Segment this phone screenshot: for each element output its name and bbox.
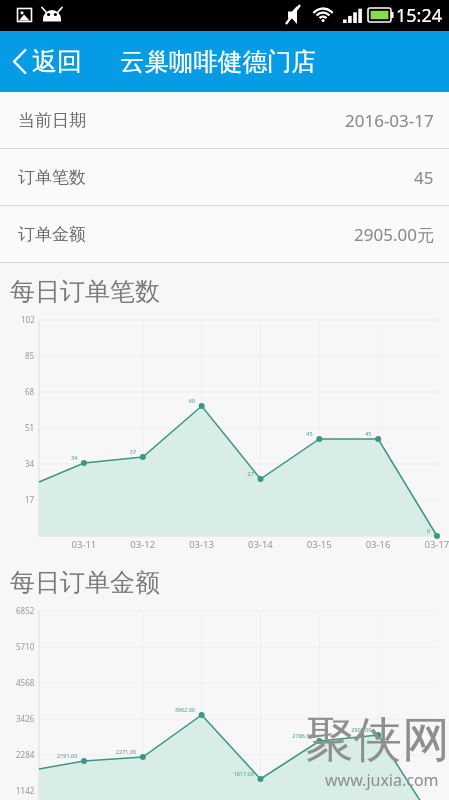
staticText: 订单金额	[18, 224, 86, 245]
staticText: 45	[414, 166, 434, 189]
button[interactable]: 当前日期	[0, 92, 449, 148]
staticText: 订单笔数	[18, 167, 86, 188]
staticText: 2905.00元	[354, 223, 434, 246]
staticText: 返回	[32, 46, 82, 77]
staticText: 2016-03-17	[345, 109, 434, 132]
staticText: 云巢咖啡健德门店	[120, 46, 316, 77]
staticText: 每日订单金额	[10, 567, 160, 598]
button[interactable]: 订单金额	[0, 206, 449, 262]
button[interactable]: 订单笔数	[0, 149, 449, 205]
button[interactable]: 返回	[0, 46, 94, 77]
staticText: 当前日期	[18, 110, 86, 131]
staticText: 每日订单笔数	[10, 276, 160, 307]
staticText: 15:24	[396, 3, 443, 28]
